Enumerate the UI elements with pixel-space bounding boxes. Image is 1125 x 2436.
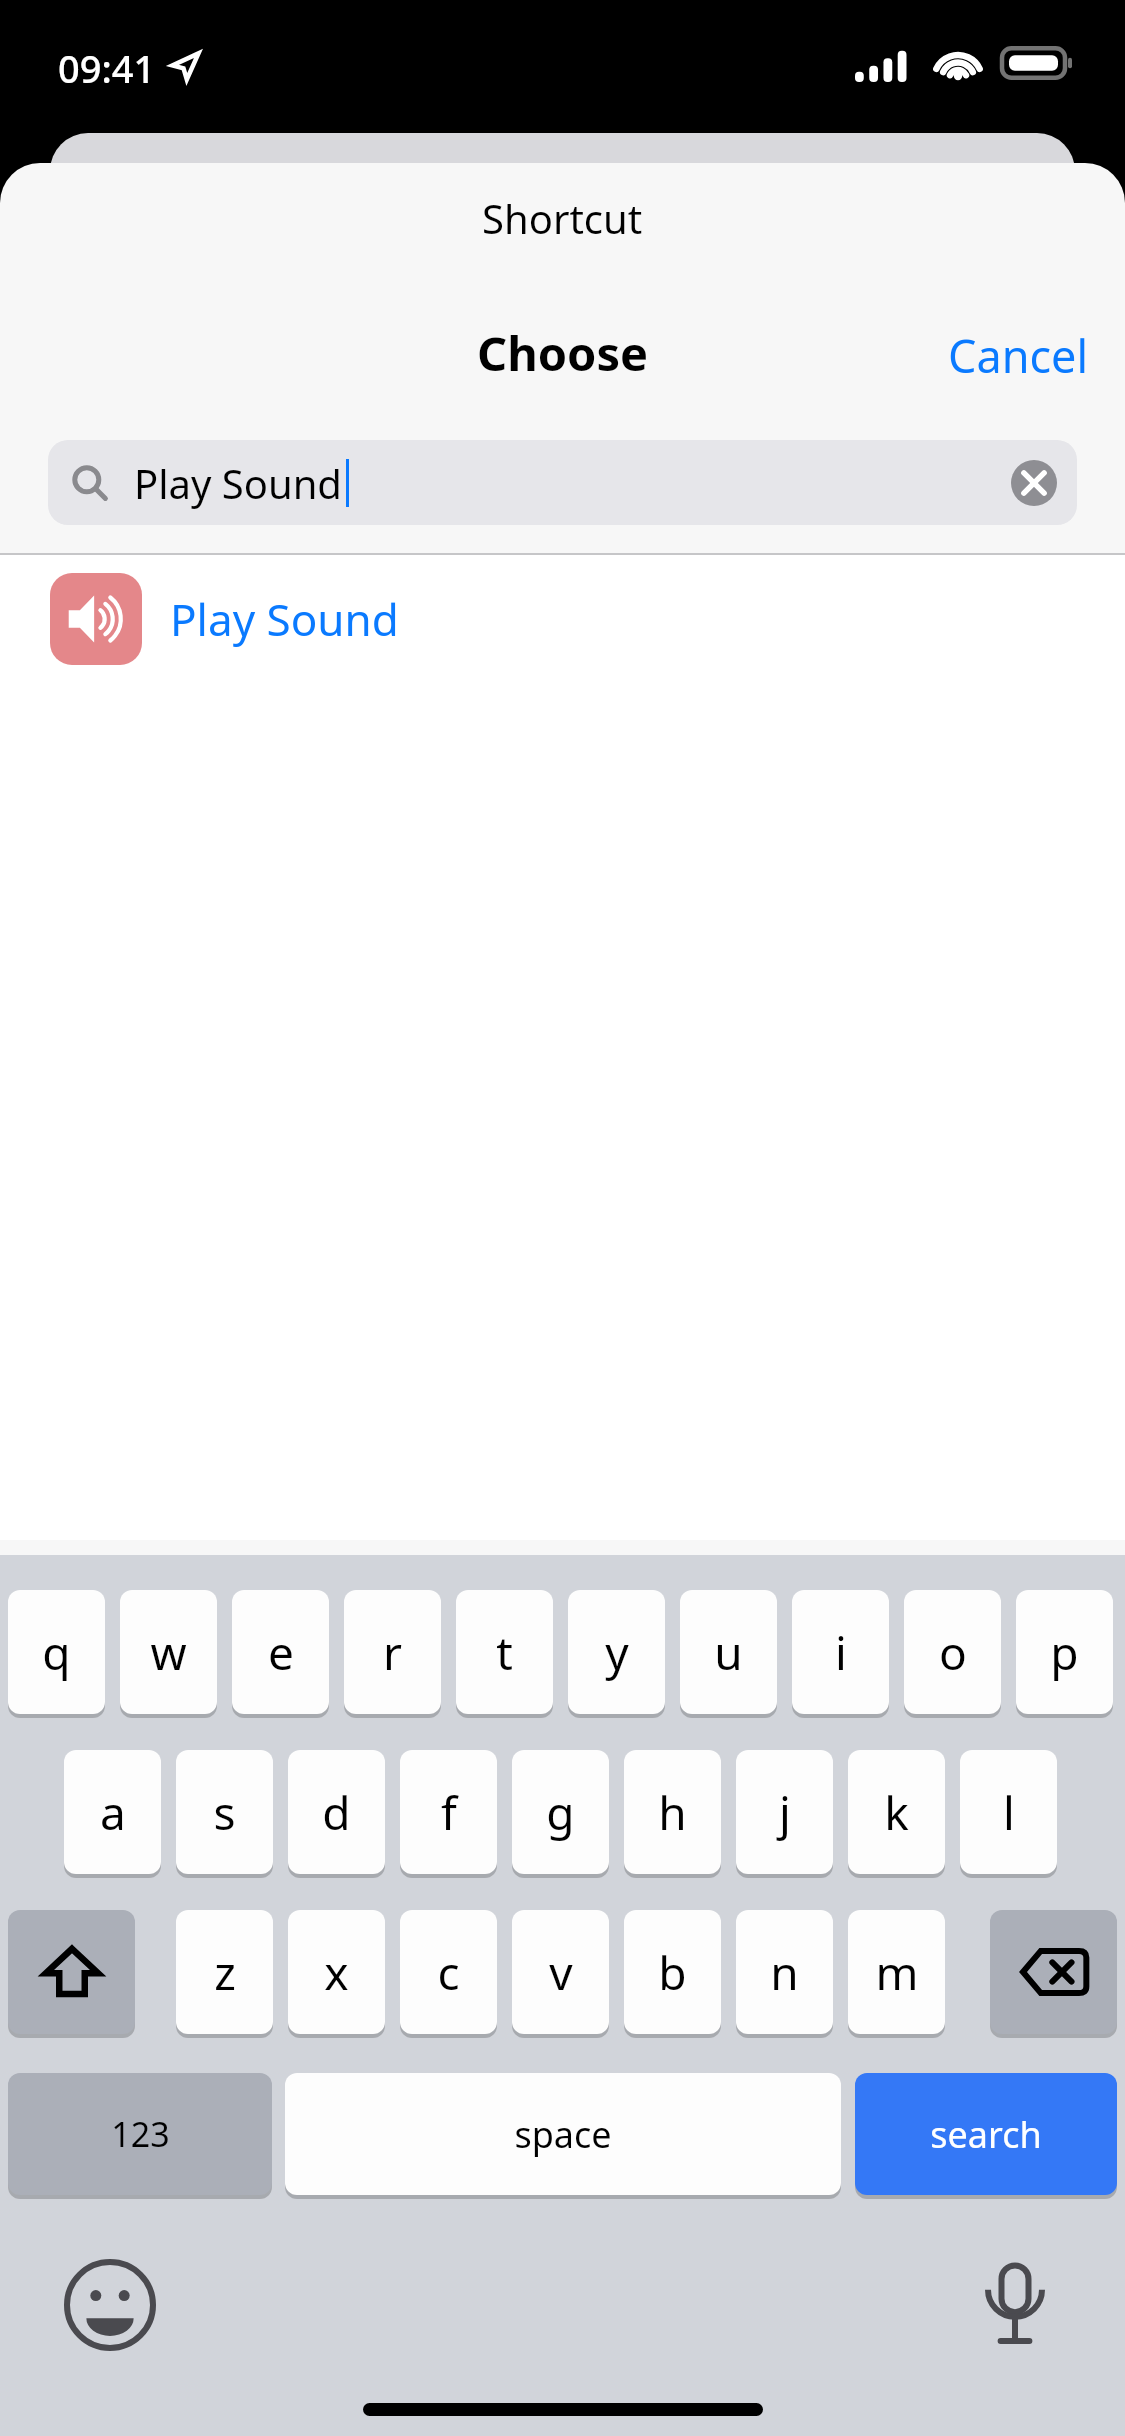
button[interactable]: p <box>1016 1590 1113 1714</box>
button[interactable]: y <box>568 1590 665 1714</box>
button[interactable]: a <box>64 1750 161 1874</box>
button[interactable]: Play Sound <box>48 440 1077 525</box>
staticText: l <box>1003 1781 1015 1844</box>
staticText: h <box>658 1781 687 1844</box>
button[interactable]: d <box>288 1750 385 1874</box>
button[interactable]: v <box>512 1910 609 2034</box>
button[interactable]: o <box>904 1590 1001 1714</box>
button[interactable]: h <box>624 1750 721 1874</box>
staticText: k <box>884 1781 909 1844</box>
staticText: y <box>605 1621 629 1684</box>
staticText: m <box>875 1941 919 2004</box>
staticText: a <box>100 1781 126 1844</box>
button[interactable]: k <box>848 1750 945 1874</box>
button[interactable]: u <box>680 1590 777 1714</box>
staticText: p <box>1050 1621 1079 1684</box>
staticText: g <box>546 1781 575 1844</box>
button[interactable]: n <box>736 1910 833 2034</box>
staticText: r <box>383 1621 402 1684</box>
button[interactable]: Cancel <box>912 313 1125 398</box>
staticText: v <box>549 1941 573 2004</box>
staticText: i <box>835 1621 847 1684</box>
button[interactable]: t <box>456 1590 553 1714</box>
staticText: e <box>268 1621 294 1684</box>
button[interactable]: e <box>232 1590 329 1714</box>
button[interactable]: 123 <box>8 2073 272 2195</box>
button[interactable]: space <box>285 2073 841 2195</box>
button[interactable]: i <box>792 1590 889 1714</box>
staticText: b <box>658 1941 687 2004</box>
button[interactable]: b <box>624 1910 721 2034</box>
button[interactable]: search <box>855 2073 1117 2195</box>
button[interactable]: q <box>8 1590 105 1714</box>
staticText: f <box>441 1781 457 1844</box>
button[interactable]: w <box>120 1590 217 1714</box>
staticText: Play Sound <box>170 589 399 649</box>
staticText: d <box>322 1781 351 1844</box>
button[interactable]: Play Sound <box>0 555 1125 683</box>
button[interactable]: f <box>400 1750 497 1874</box>
staticText: Shortcut <box>482 191 643 245</box>
staticText: u <box>714 1621 743 1684</box>
button[interactable]: r <box>344 1590 441 1714</box>
button[interactable]: g <box>512 1750 609 1874</box>
staticText: Choose <box>477 321 649 385</box>
staticText: o <box>939 1621 967 1684</box>
staticText: t <box>496 1621 513 1684</box>
staticText: 09:41 <box>58 42 156 94</box>
button[interactable]: Backspace <box>990 1910 1117 2034</box>
button[interactable]: Dictation <box>965 2255 1065 2355</box>
staticText: j <box>779 1781 791 1844</box>
staticText: Play Sound <box>134 456 342 510</box>
button[interactable]: c <box>400 1910 497 2034</box>
staticText: z <box>214 1941 236 2004</box>
staticText: w <box>150 1621 187 1684</box>
button[interactable]: s <box>176 1750 273 1874</box>
staticText: space <box>514 2110 612 2159</box>
button[interactable]: m <box>848 1910 945 2034</box>
button[interactable]: Shift <box>8 1910 135 2034</box>
staticText: search <box>930 2110 1042 2159</box>
staticText: x <box>324 1941 349 2004</box>
button[interactable]: z <box>176 1910 273 2034</box>
button[interactable]: Emoji keyboard <box>60 2255 160 2355</box>
staticText: n <box>770 1941 799 2004</box>
staticText: Cancel <box>948 325 1089 386</box>
button[interactable]: Clear text <box>1011 460 1057 506</box>
button[interactable]: x <box>288 1910 385 2034</box>
staticText: c <box>437 1941 460 2004</box>
button[interactable]: j <box>736 1750 833 1874</box>
staticText: 123 <box>111 2111 170 2157</box>
staticText: q <box>42 1621 71 1684</box>
staticText: s <box>213 1781 236 1844</box>
button[interactable]: l <box>960 1750 1057 1874</box>
